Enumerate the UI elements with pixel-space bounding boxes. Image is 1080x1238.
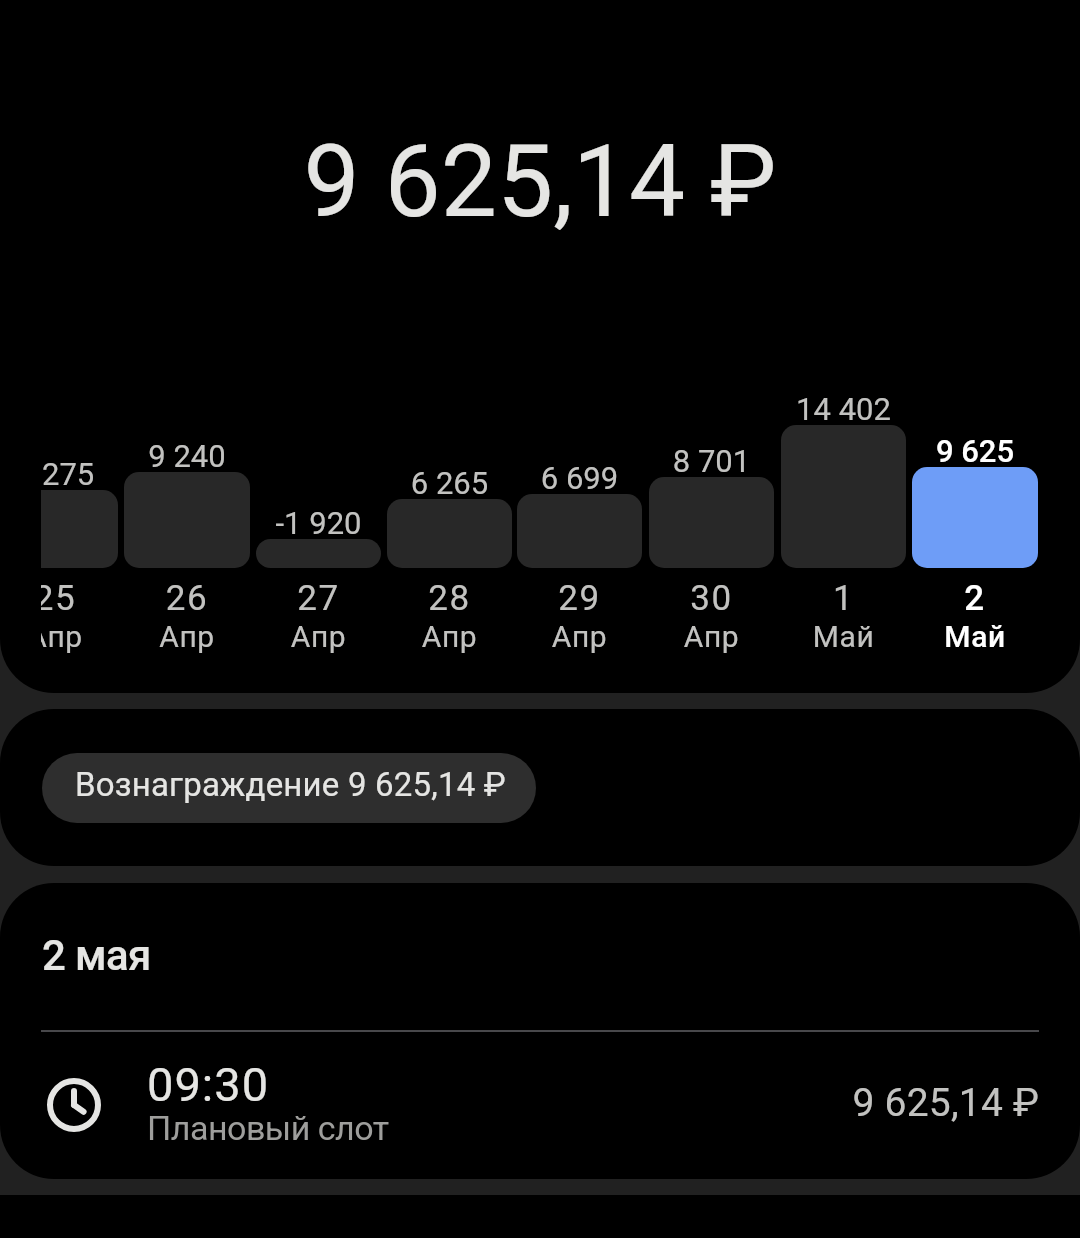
button[interactable]: 28 Апр 6 265: [387, 499, 512, 568]
staticText: 2 мая: [42, 931, 151, 980]
button[interactable]: 29 Апр 6 699: [517, 494, 642, 568]
staticText: 6 699: [517, 460, 642, 496]
staticText: 28: [387, 578, 512, 619]
staticText: 9 625: [912, 433, 1038, 469]
button[interactable]: 2 Май 9 625: [912, 467, 1038, 568]
staticText: 6 265: [387, 465, 512, 501]
staticText: 14 402: [781, 391, 906, 427]
staticText: Вознаграждение 9 625,14 ₽: [75, 765, 506, 804]
button[interactable]: 27 Апр -1 920: [256, 539, 381, 568]
button[interactable]: Scheduled time slot: [0, 1043, 1080, 1173]
staticText: Апр: [649, 619, 774, 654]
staticText: 9 625,14 ₽: [0, 123, 1080, 240]
staticText: 9 625,14 ₽: [0, 1080, 1039, 1126]
other: Scheduled time slot: [47, 1078, 101, 1132]
staticText: 26: [124, 578, 250, 619]
button[interactable]: 25 Апр 275: [41, 490, 118, 568]
staticText: 09:30: [147, 1057, 270, 1112]
staticText: Май: [781, 619, 906, 654]
button[interactable]: Вознаграждение 9 625,14 ₽: [42, 753, 536, 823]
staticText: Плановый слот: [147, 1108, 389, 1148]
staticText: -1 920: [256, 505, 381, 541]
staticText: Апр: [517, 619, 642, 654]
staticText: Май: [912, 619, 1038, 654]
staticText: 275: [42, 456, 95, 492]
staticText: 8 701: [649, 443, 774, 479]
staticText: 30: [649, 578, 774, 619]
staticText: 27: [256, 578, 381, 619]
staticText: Апр: [387, 619, 512, 654]
staticText: 25: [41, 578, 118, 619]
staticText: Апр: [41, 619, 118, 654]
staticText: 2: [912, 578, 1038, 619]
staticText: Апр: [124, 619, 250, 654]
staticText: 9 240: [124, 438, 250, 474]
staticText: Апр: [256, 619, 381, 654]
staticText: 29: [517, 578, 642, 619]
button[interactable]: 30 Апр 8 701: [649, 477, 774, 568]
button[interactable]: 26 Апр 9 240: [124, 472, 250, 568]
button[interactable]: 1 Май 14 402: [781, 425, 906, 568]
staticText: 1: [781, 578, 906, 619]
